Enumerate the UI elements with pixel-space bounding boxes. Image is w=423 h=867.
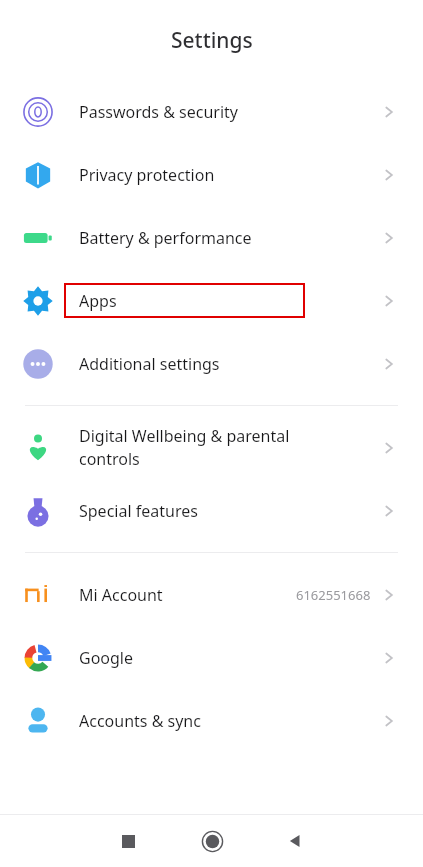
staticText: Apps	[79, 290, 117, 312]
button[interactable]: Google	[0, 626, 423, 689]
staticText: Digital Wellbeing & parental controls	[79, 425, 290, 470]
staticText: Accounts & sync	[79, 710, 201, 732]
button[interactable]: Accounts & sync	[0, 689, 423, 752]
button[interactable]: Battery & performance	[0, 206, 423, 269]
staticText: Mi Account	[79, 584, 163, 606]
button[interactable]: Recents	[110, 823, 146, 859]
staticText: Settings	[171, 26, 253, 55]
staticText: Special features	[79, 500, 198, 522]
button[interactable]: Privacy protection	[0, 143, 423, 206]
staticText: Privacy protection	[79, 164, 215, 186]
staticText: Google	[79, 647, 134, 669]
button[interactable]: Back	[277, 823, 313, 859]
staticText: 6162551668	[296, 586, 371, 604]
button[interactable]: Special features	[0, 479, 423, 542]
button[interactable]: Apps	[0, 269, 423, 332]
button[interactable]: Passwords & security	[0, 80, 423, 143]
button[interactable]: Additional settings	[0, 332, 423, 395]
button[interactable]: Mi Account	[0, 563, 423, 626]
button[interactable]: Digital Wellbeing & parental controls	[0, 416, 423, 479]
staticText: Additional settings	[79, 353, 220, 375]
staticText: Passwords & security	[79, 101, 238, 123]
button[interactable]: Home	[192, 821, 232, 861]
staticText: Battery & performance	[79, 227, 252, 249]
